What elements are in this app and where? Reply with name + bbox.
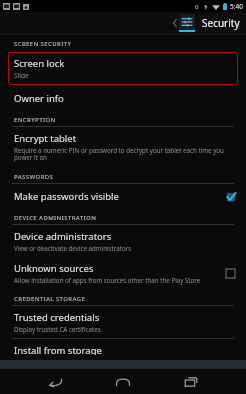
button[interactable]: Navigate up, Settings: [171, 14, 246, 32]
staticText: Encrypt tablet: [14, 132, 77, 145]
staticText: Trusted credentials: [14, 311, 100, 324]
button[interactable]: Install from storage: [0, 339, 246, 360]
staticText: ENCRYPTION: [14, 116, 56, 124]
staticText: DEVICE ADMINISTRATION: [14, 214, 97, 222]
other: Checked: [225, 191, 236, 202]
staticText: Require a numeric PIN or password to dec…: [14, 146, 232, 162]
staticText: Slide: [14, 71, 29, 80]
staticText: Screen lock: [14, 57, 65, 70]
staticText: Security: [202, 16, 240, 30]
button[interactable]: Device administrators: [0, 225, 246, 257]
staticText: 5:40: [230, 2, 243, 11]
button[interactable]: Back: [38, 369, 72, 394]
staticText: Unknown sources: [14, 262, 94, 275]
staticText: SCREEN SECURITY: [14, 40, 72, 48]
button[interactable]: Recent apps: [174, 369, 208, 394]
staticText: Make passwords visible: [14, 190, 119, 203]
staticText: PASSWORDS: [14, 173, 54, 181]
button[interactable]: Encrypt tablet: [0, 127, 246, 167]
button[interactable]: Home: [106, 369, 140, 394]
button[interactable]: Screen lock: [8, 52, 238, 85]
staticText: CREDENTIAL STORAGE: [14, 295, 86, 303]
staticText: Display trusted CA certificates: [14, 325, 101, 333]
staticText: Allow installation of apps from sources …: [14, 276, 201, 284]
button[interactable]: Trusted credentials: [0, 306, 246, 338]
staticText: Install from storage: [14, 344, 102, 355]
button[interactable]: Unknown sources: [0, 257, 246, 289]
staticText: View or deactivate device administrators: [14, 244, 132, 252]
staticText: 0: [195, 3, 199, 11]
button[interactable]: Owner info: [0, 85, 246, 110]
staticText: Device administrators: [14, 230, 112, 243]
button[interactable]: Make passwords visible: [0, 184, 246, 208]
staticText: Owner info: [14, 92, 64, 105]
other: Unchecked: [225, 268, 236, 279]
